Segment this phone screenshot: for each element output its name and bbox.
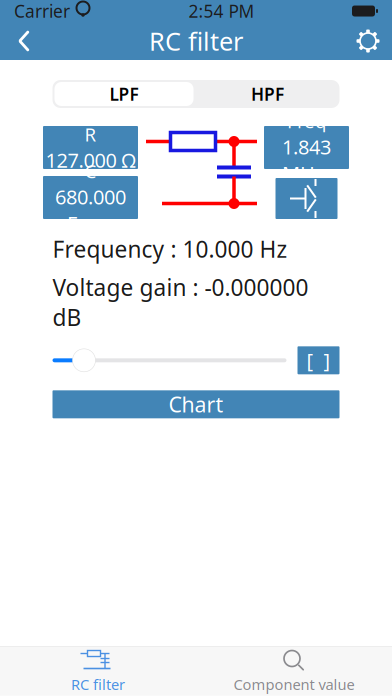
button[interactable]: RC filter	[0, 647, 196, 696]
button[interactable]: R	[43, 126, 138, 169]
staticText: 1.843 MHz	[282, 133, 331, 186]
staticText: Carrier	[14, 0, 70, 22]
staticText: HPF	[251, 82, 284, 105]
button[interactable]: Range	[297, 346, 339, 374]
button[interactable]: HPF	[195, 80, 339, 108]
staticText: Component value	[233, 674, 354, 694]
staticText: 680.000 pF	[55, 183, 126, 236]
button[interactable]: Freq	[264, 126, 349, 169]
button[interactable]: Component value	[196, 647, 392, 696]
button[interactable]: C	[43, 176, 138, 219]
staticText: 127.000 Ω	[45, 147, 135, 173]
staticText: RC filter	[149, 24, 243, 58]
staticText: [ ]	[306, 347, 330, 374]
button[interactable]: Transistor	[275, 178, 337, 219]
staticText: 2:54 PM	[188, 0, 254, 22]
staticText: C	[84, 158, 96, 183]
staticText: LPF	[109, 82, 138, 105]
staticText: Voltage gain : -0.000000 dB	[52, 272, 308, 332]
staticText: R	[84, 122, 96, 147]
staticText: Chart	[168, 390, 223, 418]
button[interactable]: Settings	[346, 22, 390, 60]
button[interactable]: Chart	[52, 390, 339, 418]
staticText: Frequency : 10.000 Hz	[52, 234, 287, 264]
staticText: RC filter	[71, 674, 125, 694]
button[interactable]: Back	[2, 22, 46, 60]
staticText: Freq	[287, 108, 326, 133]
button[interactable]: LPF	[52, 80, 195, 108]
